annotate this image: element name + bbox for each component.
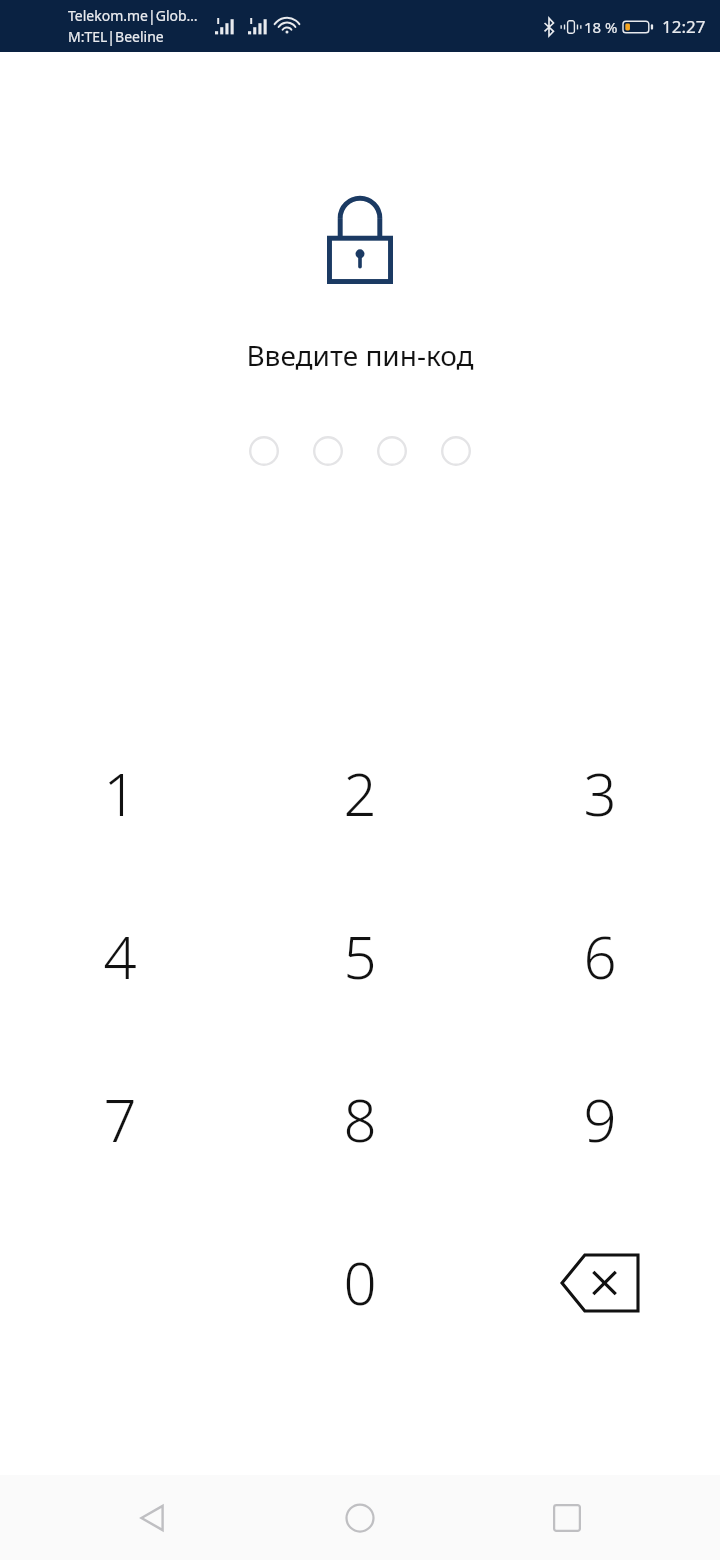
staticText: Telekom.me|Glob… bbox=[68, 6, 198, 25]
button[interactable]: 1 bbox=[0, 712, 240, 875]
staticText: M:TEL|Beeline bbox=[68, 27, 164, 46]
staticText: 18 % bbox=[584, 17, 618, 37]
button[interactable]: Recents bbox=[522, 1475, 612, 1560]
staticText: 3 bbox=[583, 754, 617, 833]
staticText: 4 bbox=[103, 917, 137, 996]
button[interactable]: 6 bbox=[480, 875, 720, 1038]
button[interactable]: 7 bbox=[0, 1038, 240, 1201]
staticText: 5 bbox=[343, 917, 377, 996]
button[interactable]: 5 bbox=[240, 875, 480, 1038]
staticText: Введите пин-код bbox=[246, 336, 474, 374]
button[interactable]: 0 bbox=[240, 1201, 480, 1364]
button[interactable]: 8 bbox=[240, 1038, 480, 1201]
button[interactable]: Home bbox=[315, 1475, 405, 1560]
staticText: 0 bbox=[343, 1243, 377, 1322]
staticText: 7 bbox=[103, 1080, 137, 1159]
staticText: 8 bbox=[343, 1080, 377, 1159]
staticText: 12:27 bbox=[662, 15, 706, 38]
button[interactable]: 4 bbox=[0, 875, 240, 1038]
button[interactable]: 2 bbox=[240, 712, 480, 875]
button[interactable]: 3 bbox=[480, 712, 720, 875]
staticText: 1 bbox=[103, 754, 137, 833]
button[interactable]: Backspace bbox=[480, 1201, 720, 1364]
staticText: 2 bbox=[343, 754, 377, 833]
button[interactable]: 9 bbox=[480, 1038, 720, 1201]
button[interactable]: Back bbox=[108, 1475, 198, 1560]
staticText: 6 bbox=[583, 917, 617, 996]
staticText: 9 bbox=[583, 1080, 617, 1159]
